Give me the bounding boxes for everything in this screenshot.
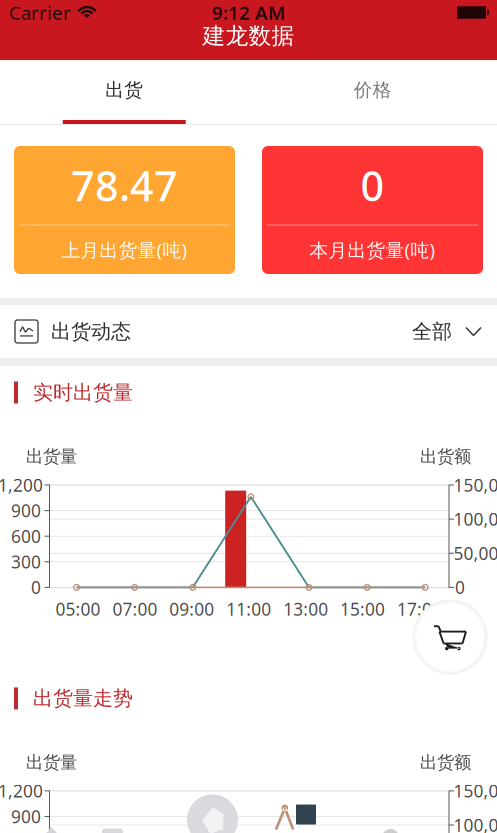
staticText: 出货额 — [420, 446, 471, 467]
button[interactable]: 价格 — [248, 60, 497, 124]
staticText: 17:00 — [397, 597, 442, 620]
staticText: 1,200 — [0, 473, 43, 496]
staticText: 05:00 — [55, 597, 100, 620]
staticText: 09:00 — [169, 597, 214, 620]
staticText: 9:12 AM — [212, 0, 285, 25]
staticText: Carrier — [9, 0, 71, 25]
staticText: 1,200 — [0, 779, 43, 802]
staticText: 150,0 — [453, 473, 497, 496]
staticText: 07:00 — [112, 597, 157, 620]
staticText: 900 — [11, 499, 41, 522]
staticText: 15:00 — [340, 597, 385, 620]
button[interactable]: 0 — [262, 146, 483, 274]
staticText: 出货 — [105, 78, 143, 101]
button[interactable]: 购物车 — [412, 599, 488, 675]
staticText: 150,0 — [453, 779, 497, 802]
staticText: 300 — [11, 550, 41, 573]
staticText: 出货量走势 — [33, 686, 133, 711]
staticText: 100,0 — [453, 813, 497, 833]
staticText: 100,0 — [453, 508, 497, 531]
button[interactable]: 出货动态 — [0, 305, 497, 358]
staticText: 0 — [31, 576, 41, 599]
staticText: 价格 — [354, 78, 392, 101]
staticText: 0 — [360, 158, 384, 213]
staticText: 0 — [455, 576, 465, 599]
button[interactable]: 出货 — [0, 60, 248, 124]
staticText: 建龙数据 — [202, 22, 294, 50]
staticText: 出货额 — [420, 752, 471, 773]
staticText: 全部 — [412, 319, 452, 344]
staticText: 13:00 — [283, 597, 328, 620]
staticText: 实时出货量 — [33, 380, 133, 405]
staticText: 600 — [11, 525, 41, 548]
staticText: 上月出货量(吨) — [61, 237, 187, 262]
staticText: 出货量 — [26, 446, 77, 467]
staticText: 78.47 — [71, 158, 178, 213]
staticText: 出货量 — [26, 752, 77, 773]
staticText: 900 — [11, 805, 41, 828]
staticText: 本月出货量(吨) — [309, 237, 435, 262]
button[interactable]: 78.47 — [14, 146, 235, 274]
staticText: 11:00 — [226, 597, 271, 620]
staticText: 50,00 — [453, 542, 497, 565]
staticText: 出货动态 — [51, 319, 131, 344]
